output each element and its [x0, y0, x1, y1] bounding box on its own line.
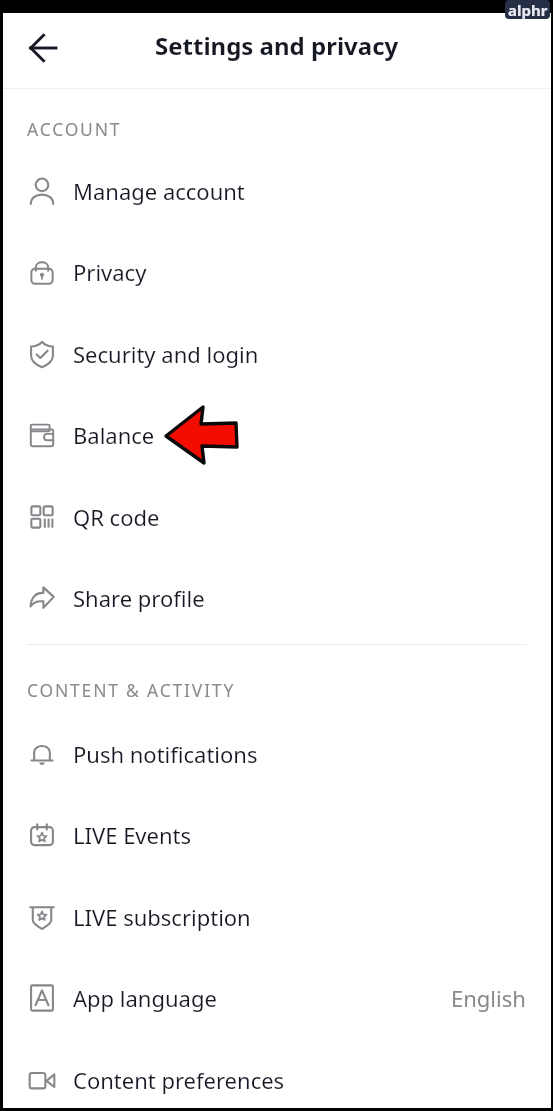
staticText: App language	[73, 983, 217, 1013]
staticText: ACCOUNT	[27, 117, 122, 141]
staticText: Push notifications	[73, 739, 258, 769]
staticText: Privacy	[73, 257, 147, 287]
staticText: alphr	[508, 0, 548, 19]
button[interactable]: Content preferences	[3, 1039, 551, 1108]
staticText: Balance	[73, 420, 155, 450]
staticText: Content preferences	[73, 1065, 285, 1095]
button[interactable]: Share profile	[3, 557, 551, 639]
staticText: LIVE Events	[73, 820, 192, 850]
staticText: QR code	[73, 502, 160, 532]
staticText: English	[451, 983, 526, 1013]
staticText: Manage account	[73, 176, 245, 206]
button[interactable]: LIVE Events	[3, 794, 551, 876]
button[interactable]: Back	[19, 24, 67, 72]
button[interactable]: Security and login	[3, 313, 551, 394]
staticText: CONTENT & ACTIVITY	[27, 678, 236, 702]
button[interactable]: LIVE subscription	[3, 876, 551, 957]
button[interactable]: Manage account	[3, 150, 551, 231]
staticText: Settings and privacy	[155, 29, 399, 62]
button[interactable]: Balance	[3, 394, 551, 476]
button[interactable]: Push notifications	[3, 713, 551, 794]
staticText: Security and login	[73, 339, 259, 369]
staticText: LIVE subscription	[73, 902, 251, 932]
staticText: Share profile	[73, 583, 205, 613]
button[interactable]: Privacy	[3, 231, 551, 313]
button[interactable]: App language	[3, 957, 551, 1039]
button[interactable]: QR code	[3, 476, 551, 557]
